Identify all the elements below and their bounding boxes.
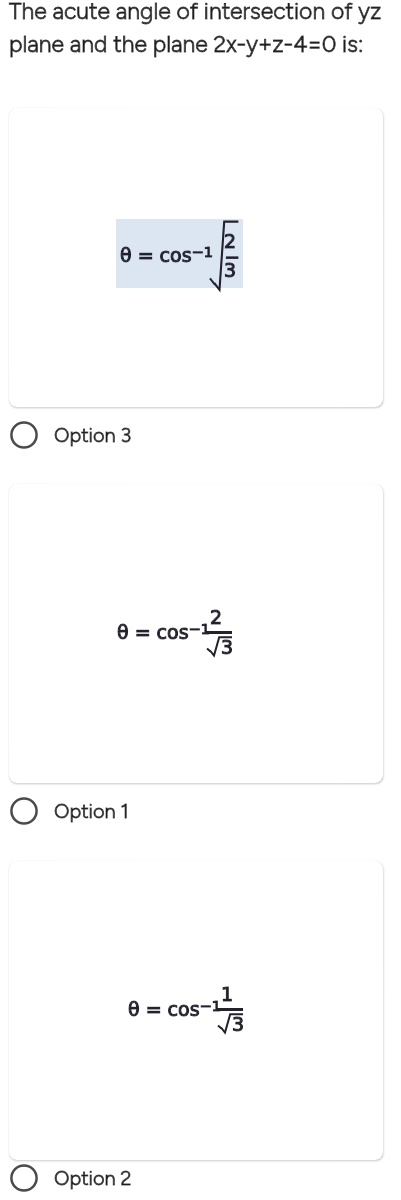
button[interactable]: θ = cos−1: [9, 108, 383, 407]
other: Option 2: [10, 1164, 38, 1192]
button[interactable]: Option 3: [0, 407, 401, 466]
staticText: θ = cos−1: [120, 244, 213, 267]
staticText: 3: [221, 636, 234, 658]
button[interactable]: Option 1: [0, 783, 401, 842]
staticText: 2: [224, 230, 237, 252]
button[interactable]: θ = cos−1: [9, 484, 383, 783]
staticText: θ = cos−1: [117, 621, 210, 644]
staticText: 2: [210, 606, 223, 628]
staticText: 3: [224, 259, 237, 281]
staticText: 1: [221, 983, 234, 1005]
staticText: 3: [232, 1013, 245, 1035]
staticText: Option 3: [54, 423, 132, 447]
staticText: 3: [232, 1013, 245, 1035]
staticText: θ = cos−1: [117, 621, 210, 644]
staticText: The acute angle of intersection of yz pl…: [9, 0, 389, 58]
staticText: Option 2: [54, 1166, 132, 1190]
staticText: Option 1: [54, 799, 129, 823]
staticText: Option 1: [54, 799, 129, 823]
staticText: θ = cos−1: [120, 244, 213, 267]
staticText: 1: [221, 983, 234, 1005]
other: Option 1: [10, 797, 38, 825]
button[interactable]: θ = cos−1: [9, 861, 383, 1160]
staticText: 3: [224, 259, 237, 281]
staticText: Option 2: [54, 1166, 132, 1190]
staticText: The acute angle of intersection of yz pl…: [9, 0, 389, 58]
staticText: Option 3: [54, 423, 132, 447]
staticText: θ = cos−1: [128, 998, 221, 1021]
staticText: 2: [224, 230, 237, 252]
staticText: 2: [210, 606, 223, 628]
staticText: θ = cos−1: [128, 998, 221, 1021]
button[interactable]: Option 2: [0, 1160, 401, 1200]
staticText: 3: [221, 636, 234, 658]
other: Option 3: [10, 421, 38, 449]
